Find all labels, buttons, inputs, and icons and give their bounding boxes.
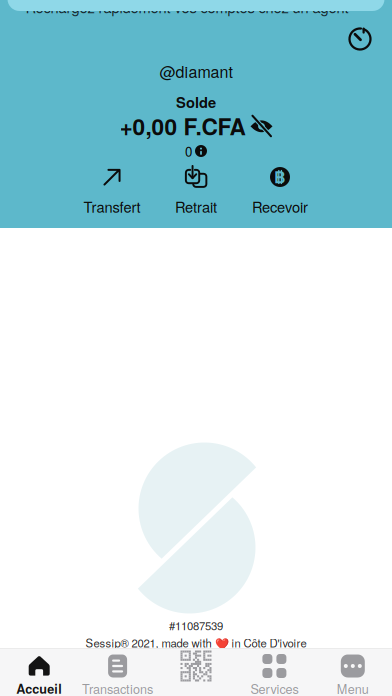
button[interactable]: Services (235, 648, 314, 696)
button[interactable]: Menu (314, 648, 392, 696)
staticText: #11087539 (169, 617, 223, 633)
staticText: +0,00 F.CFA (119, 110, 245, 142)
button[interactable]: Historique (338, 17, 382, 61)
staticText: Retrait (175, 196, 217, 217)
staticText: 0 (185, 141, 192, 161)
staticText: Solde (176, 91, 216, 112)
staticText: Services (250, 679, 298, 696)
staticText: B (274, 165, 286, 188)
staticText: Rechargez rapidement vos comptes chez un… (25, 0, 348, 17)
button[interactable]: Masquer le solde (250, 118, 272, 134)
staticText: Transfert (83, 196, 140, 217)
staticText: @diamant (159, 59, 232, 82)
staticText: Accueil (16, 679, 62, 696)
button[interactable]: Transactions (78, 648, 157, 696)
staticText: Menu (337, 679, 369, 696)
staticText: Sessip® 2021, made with ❤️ in Côte D'ivo… (85, 634, 306, 651)
button[interactable]: B (238, 165, 322, 217)
button[interactable]: Accueil (0, 648, 78, 696)
staticText: Recevoir (252, 196, 308, 217)
staticText: Transactions (82, 679, 153, 696)
button[interactable]: Retrait (154, 165, 238, 217)
button[interactable] (157, 648, 235, 696)
button[interactable]: Transfert (70, 165, 154, 217)
